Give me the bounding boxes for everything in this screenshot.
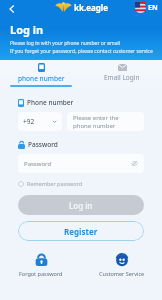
staticText: If you forget your password, please cont…: [10, 48, 153, 55]
staticText: Please enter the phone number: [73, 114, 138, 130]
staticText: Customer Service: [99, 270, 145, 277]
button[interactable]: phone number: [0, 60, 81, 92]
button[interactable]: Remember password: [18, 180, 83, 187]
staticText: EN: [148, 3, 158, 13]
staticText: Please log in with your phone number or …: [10, 40, 121, 47]
button[interactable]: Password: [18, 154, 144, 173]
staticText: phone number: [18, 74, 65, 83]
button[interactable]: Please enter the phone number: [67, 112, 144, 131]
staticText: kk.eagle: [74, 2, 108, 13]
staticText: Email Login: [104, 73, 140, 82]
staticText: +92: [23, 117, 35, 126]
staticText: Password: [28, 140, 58, 149]
staticText: Log in: [10, 22, 44, 37]
button[interactable]: +92: [18, 112, 62, 131]
button[interactable]: Email Login: [81, 60, 162, 92]
staticText: Register: [64, 226, 98, 237]
button[interactable]: Customer Service: [81, 253, 162, 277]
staticText: Password: [24, 160, 52, 168]
button[interactable]: Back: [5, 2, 19, 16]
button[interactable]: Forgot password: [0, 253, 81, 277]
staticText: Phone number: [27, 98, 74, 107]
button[interactable]: Register: [18, 221, 144, 241]
button[interactable]: EN: [135, 2, 158, 13]
staticText: Remember password: [27, 180, 83, 187]
staticText: Log in: [69, 200, 93, 211]
staticText: Forgot password: [19, 270, 63, 277]
button[interactable]: Log in: [18, 195, 144, 215]
